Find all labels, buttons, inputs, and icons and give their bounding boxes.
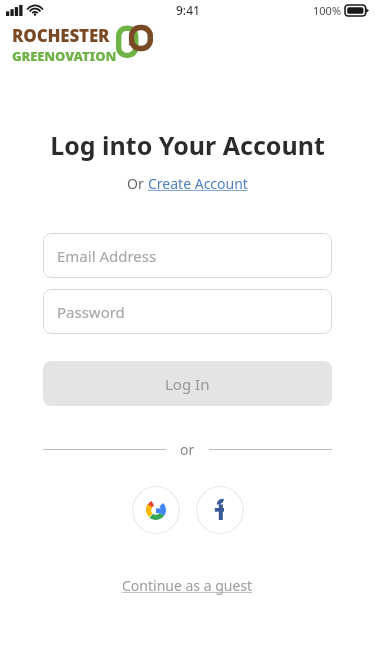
staticText: Or: [127, 174, 148, 193]
staticText: Log In: [165, 374, 210, 394]
staticText: Password: [57, 302, 125, 322]
button[interactable]: Sign in with Google: [132, 486, 180, 534]
staticText: ROCHESTER: [12, 24, 110, 47]
staticText: Create Account: [148, 174, 248, 193]
button[interactable]: Sign in with Facebook: [196, 486, 244, 534]
button[interactable]: Password: [43, 289, 332, 334]
staticText: Continue as a guest: [122, 576, 253, 595]
button[interactable]: Continue as a guest: [122, 576, 253, 595]
staticText: Log into Your Account: [0, 128, 375, 162]
staticText: 9:41: [176, 2, 200, 18]
button[interactable]: Create Account: [148, 174, 248, 193]
staticText: GREENOVATION: [12, 47, 117, 65]
button[interactable]: Email Address: [43, 233, 332, 278]
staticText: Email Address: [57, 246, 157, 266]
staticText: or: [180, 440, 195, 459]
staticText: 100%: [313, 3, 342, 18]
button[interactable]: Log In: [43, 361, 332, 406]
